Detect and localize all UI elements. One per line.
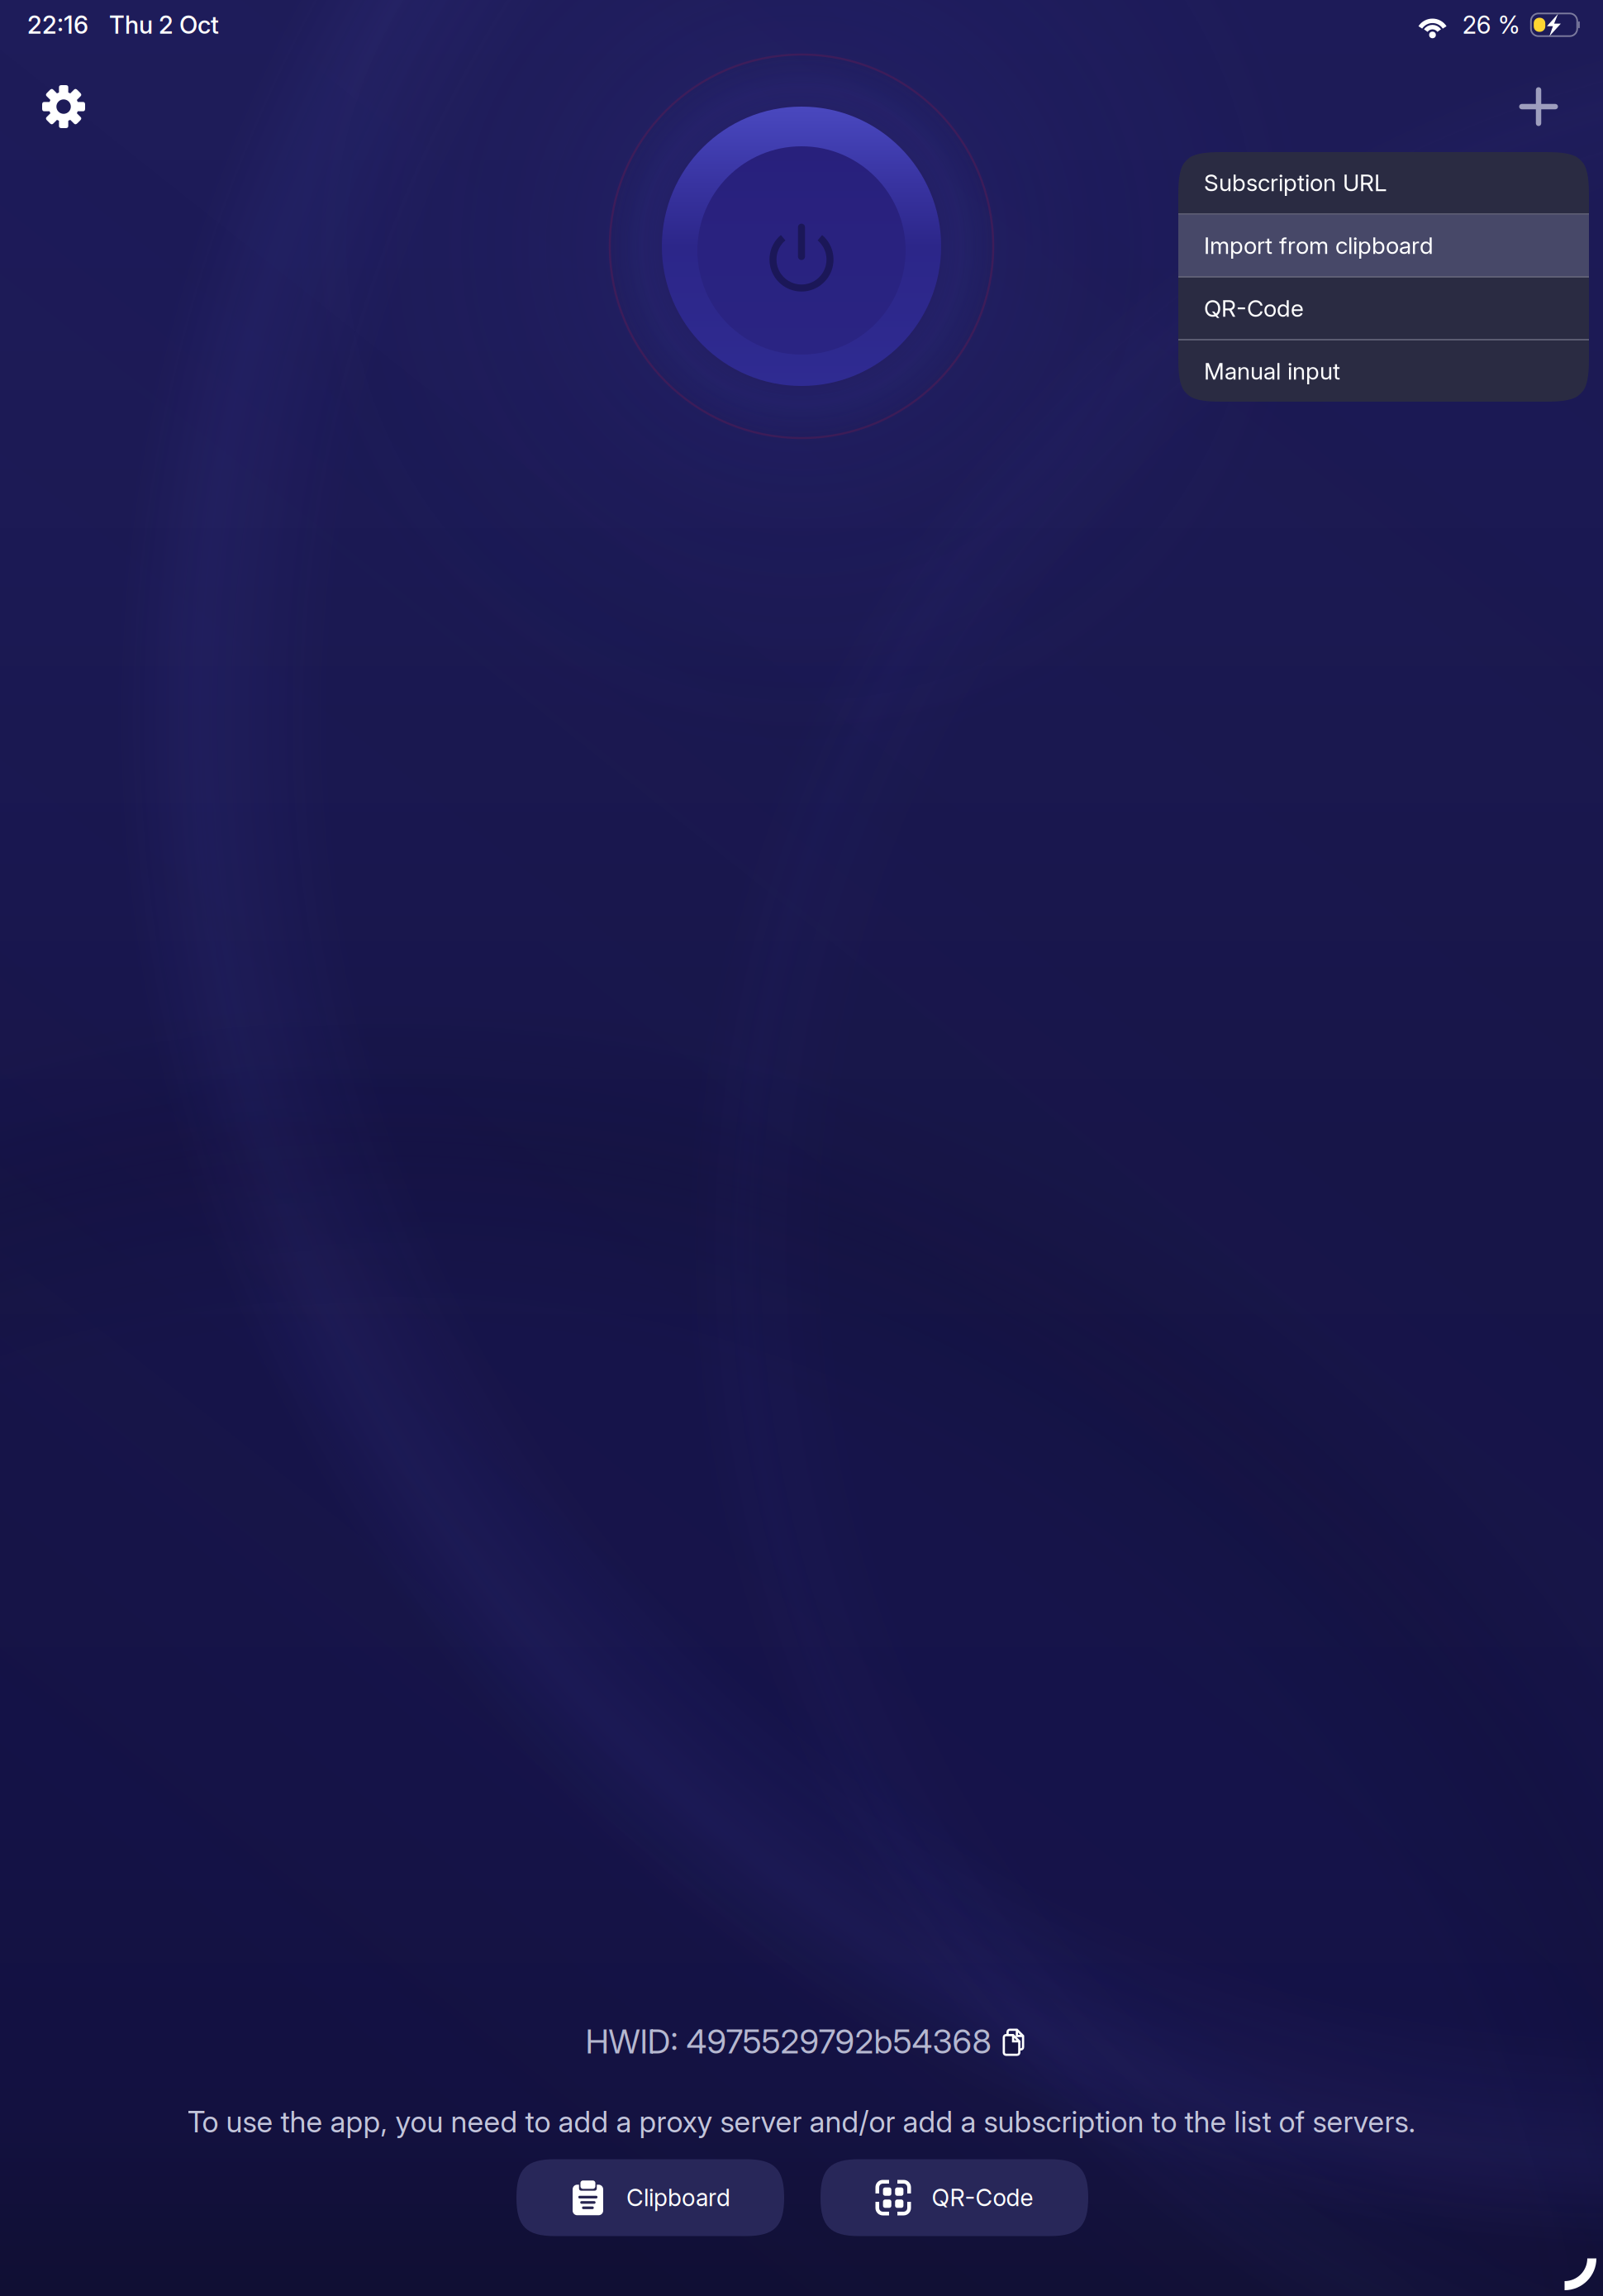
staticText: QR-Code (932, 2183, 1033, 2212)
button[interactable]: Subscription URL (1178, 152, 1589, 213)
staticText: Import from clipboard (1204, 232, 1434, 260)
staticText: 26 % (1462, 10, 1520, 40)
button[interactable]: QR-Code (1178, 278, 1589, 339)
staticText: Manual input (1204, 357, 1340, 385)
button[interactable]: Add server (1489, 61, 1588, 152)
button[interactable]: Clipboard (516, 2159, 784, 2236)
staticText: Clipboard (626, 2183, 730, 2212)
staticText: To use the app, you need to add a proxy … (187, 2104, 1416, 2139)
button[interactable]: Import from clipboard (1178, 215, 1589, 276)
button[interactable]: Manual input (1178, 340, 1589, 402)
staticText: HWID: 4975529792b54368 (585, 2021, 991, 2061)
staticText: 22:16 (27, 10, 88, 40)
staticText: QR-Code (1204, 294, 1304, 322)
staticText: Subscription URL (1204, 169, 1387, 197)
button[interactable]: Settings (14, 61, 113, 152)
staticText: Thu 2 Oct (109, 10, 219, 40)
button[interactable]: QR-Code (821, 2159, 1088, 2236)
button[interactable]: Copy HWID (577, 2016, 1032, 2067)
